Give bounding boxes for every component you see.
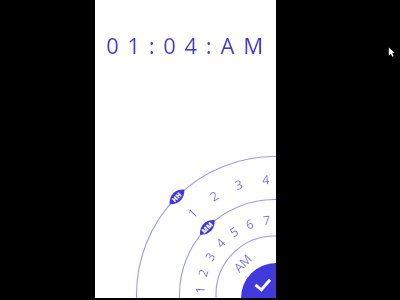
button[interactable]: Confirm time <box>241 263 276 298</box>
button[interactable]: 01:04:AM <box>102 30 276 60</box>
staticText: 01:04:AM <box>106 30 272 60</box>
